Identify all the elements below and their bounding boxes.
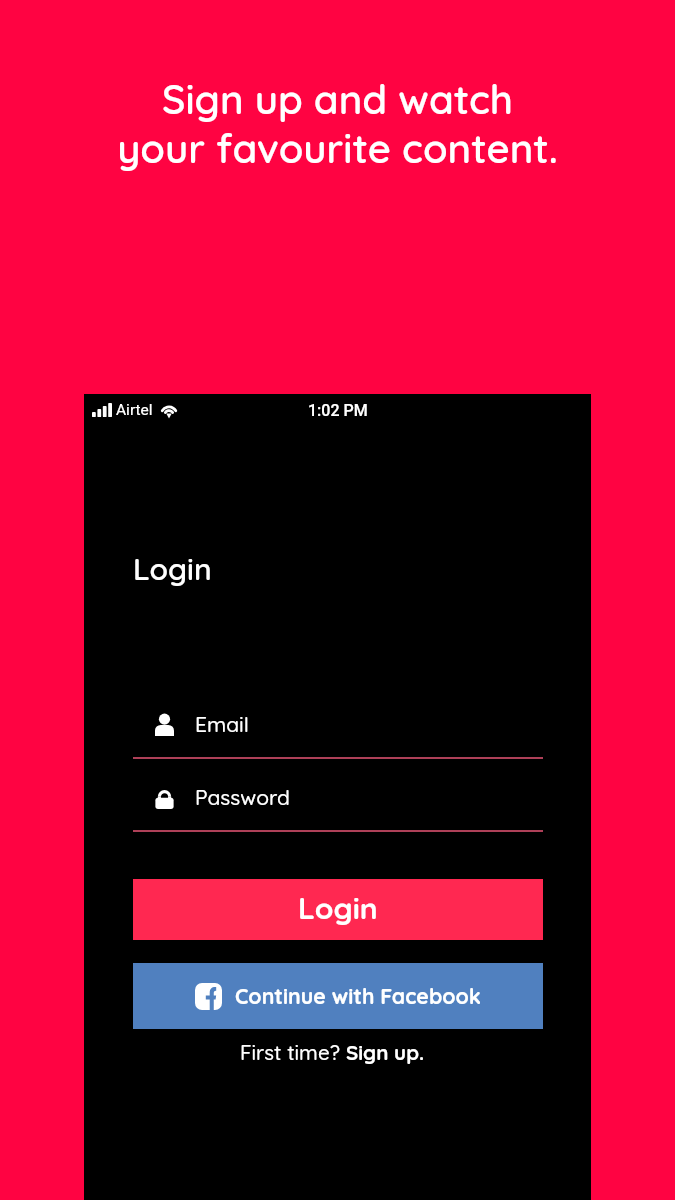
button[interactable]: Account (133, 704, 543, 759)
staticText: Sign up and watch your favourite content… (0, 74, 675, 173)
staticText: Airtel (116, 401, 153, 419)
other: Facebook (195, 983, 222, 1010)
button[interactable]: Password (133, 777, 543, 832)
staticText: First time? (240, 1039, 346, 1065)
other: Wi-Fi (160, 403, 178, 418)
staticText: Password (195, 784, 290, 810)
staticText: Login (298, 889, 378, 927)
staticText: Login (133, 550, 212, 588)
staticText: 1:02 PM (308, 401, 368, 420)
button[interactable]: Facebook (133, 963, 543, 1029)
other: Account (155, 712, 174, 737)
staticText: Continue with Facebook (235, 983, 481, 1010)
button[interactable]: Sign up. (346, 1039, 425, 1065)
other: Password (155, 785, 174, 810)
button[interactable]: Login (133, 879, 543, 940)
staticText: Email (195, 711, 249, 737)
other: Signal strength (92, 403, 112, 417)
